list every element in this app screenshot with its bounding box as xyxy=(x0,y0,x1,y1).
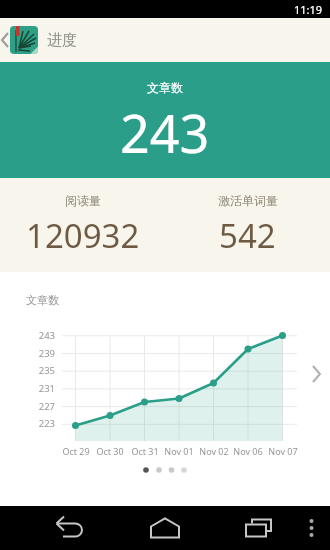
staticText: 227 xyxy=(25,400,55,413)
button[interactable]: 进度 xyxy=(0,18,330,62)
staticText: 243 xyxy=(25,329,55,342)
staticText: Nov 01 xyxy=(159,445,199,457)
staticText: 11:19 xyxy=(294,2,323,17)
button[interactable]: 阅读量 xyxy=(0,178,165,272)
button[interactable]: 文章数 xyxy=(0,272,330,506)
staticText: 239 xyxy=(25,347,55,360)
staticText: 235 xyxy=(25,364,55,377)
button[interactable] xyxy=(0,506,110,550)
staticText: 文章数 xyxy=(26,293,59,307)
staticText: 激活单词量 xyxy=(218,193,278,208)
staticText: 120932 xyxy=(26,213,140,258)
staticText: 进度 xyxy=(47,31,77,50)
staticText: Nov 02 xyxy=(194,445,234,457)
staticText: Oct 29 xyxy=(56,445,96,457)
staticText: 223 xyxy=(25,417,55,430)
staticText: 243 xyxy=(120,97,210,168)
staticText: Nov 07 xyxy=(263,445,303,457)
staticText: Oct 31 xyxy=(125,445,165,457)
staticText: Oct 30 xyxy=(90,445,130,457)
staticText: 文章数 xyxy=(147,80,183,95)
button[interactable]: 激活单词量 xyxy=(165,178,330,272)
staticText: 231 xyxy=(25,382,55,395)
staticText: 阅读量 xyxy=(65,193,101,208)
staticText: Nov 06 xyxy=(228,445,268,457)
staticText: 542 xyxy=(219,213,276,258)
button[interactable] xyxy=(110,506,220,550)
button[interactable] xyxy=(220,506,330,550)
